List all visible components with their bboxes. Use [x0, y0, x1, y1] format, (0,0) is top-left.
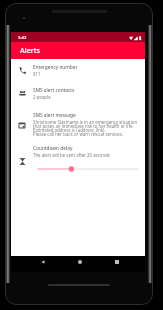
- button[interactable]: Home: [69, 256, 91, 268]
- button[interactable]: Countdown delay: [11, 145, 145, 177]
- button[interactable]: Recent apps: [106, 256, 128, 268]
- staticText: Emergency number: [33, 64, 78, 71]
- staticText: The alert will be sent after 20 seconds: [33, 152, 110, 158]
- staticText: 3:42: [18, 35, 27, 41]
- staticText: Countdown delay: [33, 145, 73, 152]
- button[interactable]: SMS alert contacts: [11, 82, 145, 105]
- staticText: SMS alert contacts: [33, 87, 75, 94]
- staticText: SMS alert message: [33, 112, 76, 119]
- button[interactable]: Back: [32, 256, 54, 268]
- staticText: 911: [33, 71, 41, 77]
- staticText: Shristname Slastname is in an emergency …: [33, 119, 138, 138]
- staticText: Alerts: [20, 45, 41, 55]
- button[interactable]: Emergency number: [11, 59, 145, 82]
- staticText: 2 people: [33, 94, 51, 100]
- button[interactable]: SMS alert message: [11, 105, 145, 145]
